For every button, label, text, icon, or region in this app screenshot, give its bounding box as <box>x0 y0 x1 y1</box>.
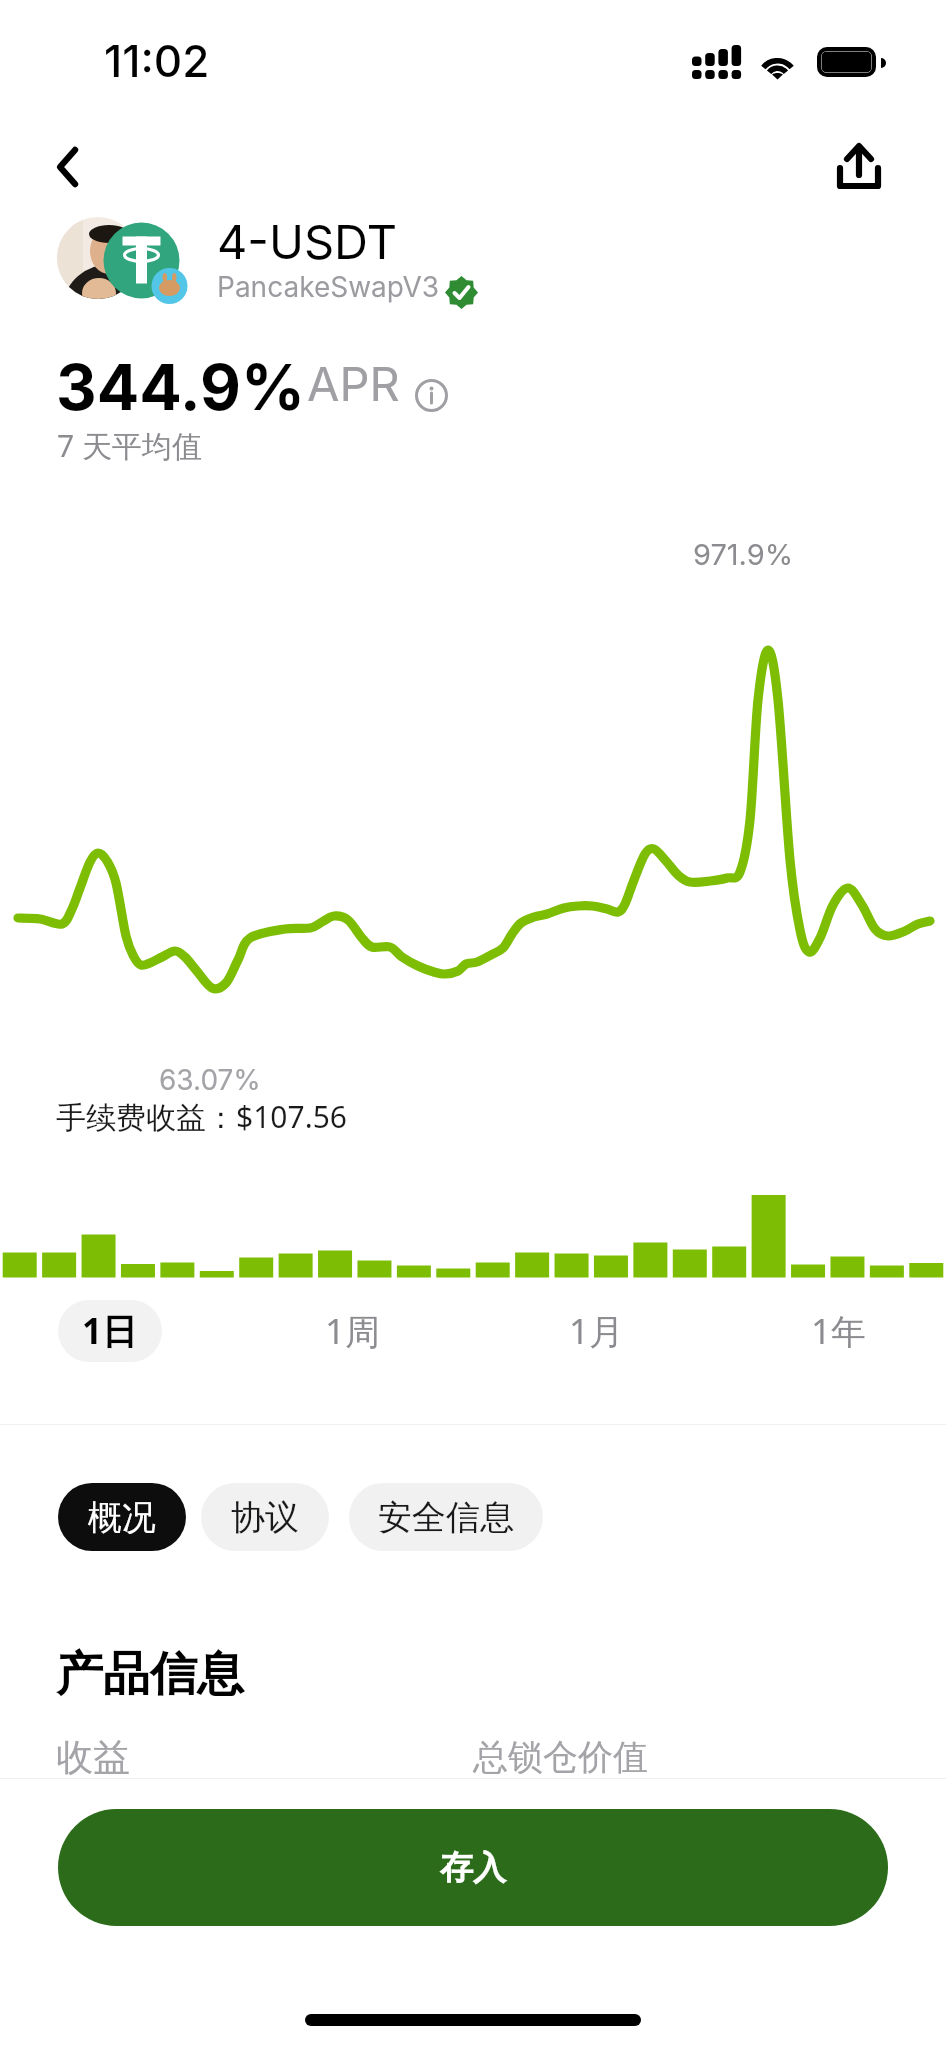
staticText: 344.9% <box>56 349 305 425</box>
button[interactable]: 存入 <box>58 1809 888 1926</box>
staticText: 63.07% <box>159 1063 261 1097</box>
staticText: 协议 <box>231 1496 299 1539</box>
staticText: 产品信息 <box>56 1645 244 1704</box>
staticText: 971.9% <box>693 537 794 572</box>
staticText: 11:02 <box>104 34 210 87</box>
staticText: APR <box>307 355 400 412</box>
staticText: 1周 <box>325 1307 381 1355</box>
staticText: 7 天平均值 <box>57 425 202 466</box>
button[interactable]: 1日 <box>58 1300 162 1362</box>
button[interactable]: Back <box>32 132 102 202</box>
staticText: 手续费收益：$107.56 <box>56 1096 347 1137</box>
button[interactable]: 1月 <box>545 1300 649 1362</box>
staticText: 收益 <box>56 1734 130 1781</box>
staticText: 1日 <box>82 1307 138 1355</box>
button[interactable]: 安全信息 <box>349 1483 543 1551</box>
staticText: 1月 <box>569 1307 625 1355</box>
button[interactable]: Share <box>826 132 896 202</box>
staticText: 概况 <box>88 1496 156 1539</box>
staticText: 总锁仓价值 <box>473 1735 648 1779</box>
staticText: 安全信息 <box>378 1496 514 1539</box>
button[interactable]: 概况 <box>58 1483 186 1551</box>
staticText: 存入 <box>440 1847 506 1889</box>
staticText: 4-USDT <box>217 213 397 270</box>
button[interactable]: 1年 <box>787 1300 891 1362</box>
staticText: PancakeSwapV3 <box>217 270 440 304</box>
button[interactable]: 1周 <box>301 1300 405 1362</box>
button[interactable]: APR info <box>415 379 448 412</box>
staticText: 1年 <box>811 1307 867 1355</box>
button[interactable]: 协议 <box>201 1483 329 1551</box>
